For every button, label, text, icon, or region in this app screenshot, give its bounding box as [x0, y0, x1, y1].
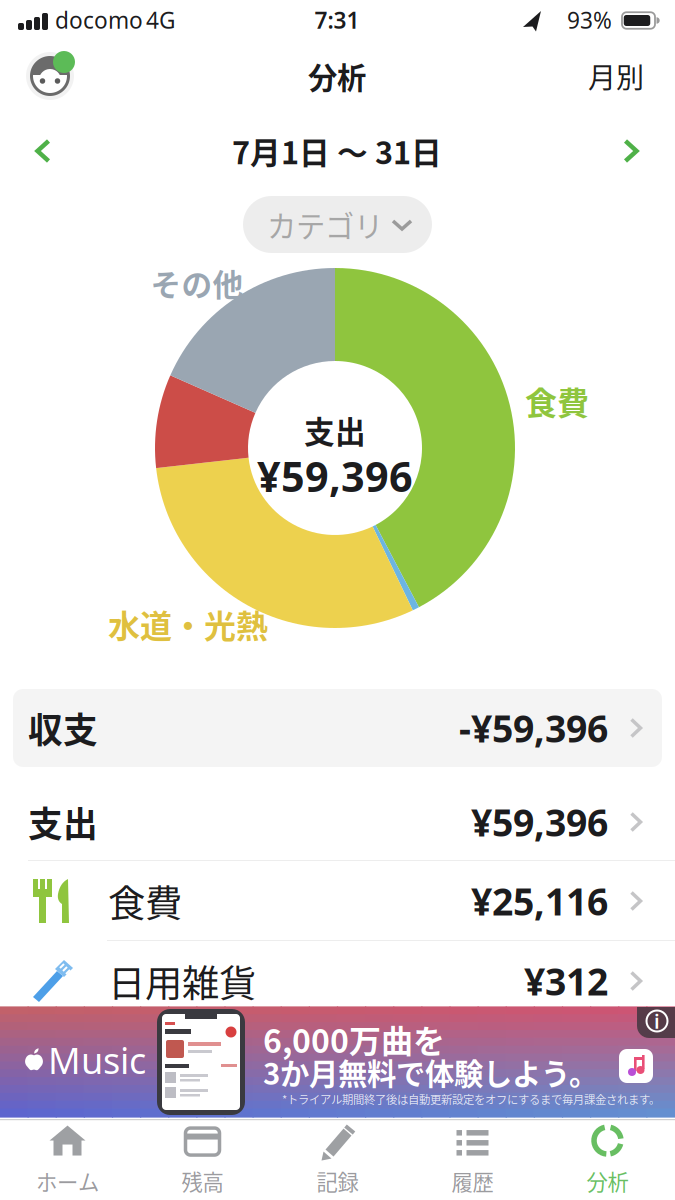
staticText: 6,000万曲を: [263, 1016, 445, 1062]
staticText: 水道・光熱: [108, 601, 268, 647]
staticText: 支出: [304, 408, 366, 452]
button[interactable]: 記録: [277, 1122, 397, 1198]
staticText: docomo: [55, 5, 143, 35]
staticText: ¥59,396: [257, 449, 413, 503]
button[interactable]: 日用雑貨: [0, 941, 675, 1021]
staticText: 93%: [567, 5, 612, 35]
staticText: ホーム: [36, 1166, 99, 1196]
staticText: -¥59,396: [459, 703, 608, 753]
button[interactable]: 次の期間: [609, 129, 653, 173]
staticText: 3か月無料で体験しよう。: [263, 1051, 598, 1093]
staticText: 分析: [308, 55, 366, 97]
staticText: カテゴリ: [267, 203, 383, 246]
button[interactable]: 前の期間: [21, 129, 65, 173]
staticText: 食費: [525, 378, 589, 424]
button[interactable]: プロフィール: [25, 51, 77, 103]
staticText: *トライアル期間終了後は自動更新設定をオフにするまで毎月課金されます。: [282, 1091, 660, 1107]
button[interactable]: 分析: [547, 1122, 667, 1198]
button[interactable]: 履歴: [412, 1122, 532, 1198]
staticText: ¥312: [524, 956, 608, 1006]
staticText: 分析: [586, 1166, 628, 1196]
staticText: 日用雑貨: [108, 954, 256, 1008]
staticText: ¥25,116: [471, 876, 608, 926]
staticText: 履歴: [451, 1166, 493, 1196]
button[interactable]: 収支: [13, 689, 662, 767]
staticText: 4G: [146, 5, 176, 35]
staticText: 7月1日 〜 31日: [232, 129, 442, 173]
button[interactable]: 支出: [0, 783, 675, 861]
button[interactable]: Music: [0, 1007, 675, 1117]
button[interactable]: 月別: [576, 54, 656, 98]
staticText: 7:31: [314, 5, 359, 35]
staticText: 支出: [28, 797, 98, 847]
staticText: 記録: [316, 1166, 358, 1196]
staticText: 残高: [181, 1166, 223, 1196]
button[interactable]: 広告について: [637, 1007, 675, 1038]
button[interactable]: 残高: [142, 1122, 262, 1198]
staticText: その他: [150, 261, 243, 305]
staticText: 月別: [588, 56, 644, 96]
staticText: Music: [48, 1036, 146, 1084]
button[interactable]: カテゴリ: [243, 196, 432, 253]
button[interactable]: ホーム: [7, 1122, 127, 1198]
staticText: i: [654, 1008, 660, 1034]
staticText: ¥59,396: [471, 797, 608, 847]
staticText: 食費: [108, 874, 182, 928]
staticText: 収支: [28, 703, 98, 753]
button[interactable]: 食費: [0, 861, 675, 941]
